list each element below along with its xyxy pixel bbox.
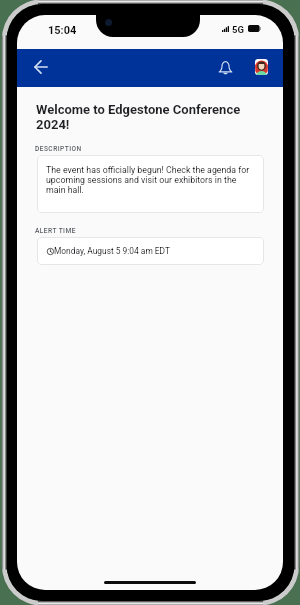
staticText: 5G [232,24,244,35]
staticText: DESCRIPTION [35,145,82,153]
button[interactable]: Monday, August 5 9:04 am EDT [37,237,264,265]
staticText: ALERT TIME [35,227,76,235]
button[interactable]: Profile [255,59,268,75]
staticText: Welcome to Edgestone Conference 2024! [36,102,250,132]
staticText: 15:04 [48,24,77,37]
button[interactable]: The event has officially begun! Check th… [37,155,264,213]
staticText: The event has officially begun! Check th… [46,165,253,195]
button[interactable]: Back [30,56,52,78]
button[interactable]: Notifications [214,56,236,78]
staticText: Monday, August 5 9:04 am EDT [54,246,171,256]
